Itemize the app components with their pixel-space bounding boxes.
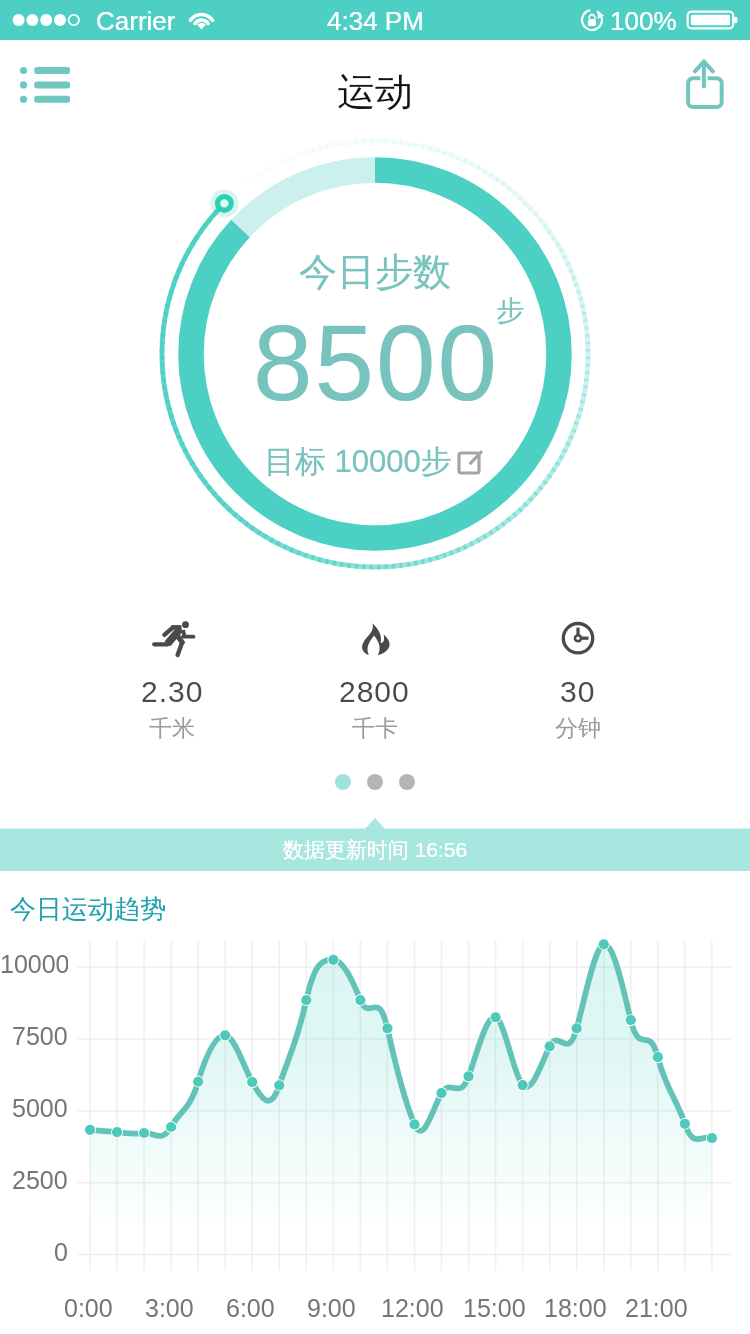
staticText: 30 <box>560 675 596 709</box>
staticText: 今日运动趋势 <box>10 893 166 926</box>
staticText: 100% <box>610 6 677 35</box>
staticText: 10000 <box>0 950 68 978</box>
staticText: 21:00 <box>625 1294 688 1322</box>
button[interactable]: 目标 10000步 <box>264 442 484 481</box>
staticText: 今日步数 <box>0 248 750 296</box>
staticText: Carrier <box>96 6 176 35</box>
staticText: 步 <box>135 293 750 328</box>
staticText: 3:00 <box>145 1294 194 1322</box>
button[interactable]: Share <box>678 52 734 116</box>
staticText: 千米 <box>149 714 195 743</box>
staticText: 9:00 <box>307 1294 356 1322</box>
staticText: 0 <box>54 1238 68 1266</box>
staticText: 4:34 PM <box>327 6 424 35</box>
staticText: 2.30 <box>141 675 204 709</box>
staticText: 运动 <box>0 68 750 116</box>
button[interactable]: 2800 <box>273 618 476 743</box>
staticText: 18:00 <box>544 1294 607 1322</box>
staticText: 5000 <box>12 1094 68 1122</box>
staticText: 2500 <box>12 1166 68 1194</box>
staticText: 6:00 <box>226 1294 275 1322</box>
staticText: 12:00 <box>381 1294 444 1322</box>
staticText: 0:00 <box>64 1294 113 1322</box>
button[interactable]: 2.30 <box>71 618 273 743</box>
staticText: 千卡 <box>352 714 398 743</box>
staticText: 8500 <box>1 303 750 423</box>
button[interactable]: Menu <box>8 53 80 117</box>
button[interactable]: 30 <box>476 618 679 743</box>
staticText: 数据更新时间 16:56 <box>0 837 750 863</box>
staticText: 2800 <box>339 675 410 709</box>
staticText: 7500 <box>12 1022 68 1050</box>
staticText: 分钟 <box>555 714 601 743</box>
staticText: 目标 10000步 <box>264 442 452 481</box>
staticText: 15:00 <box>463 1294 526 1322</box>
